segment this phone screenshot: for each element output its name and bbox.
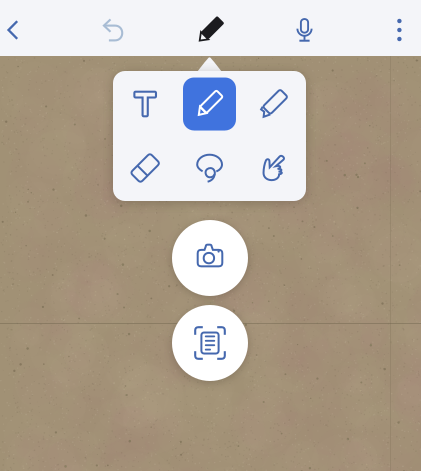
button[interactable]: Eraser tool	[113, 136, 177, 200]
button[interactable]: More options	[377, 2, 421, 58]
button[interactable]: Camera	[172, 220, 248, 296]
button[interactable]: Pen tool	[177, 72, 242, 136]
button[interactable]: Hand tool	[242, 136, 306, 200]
button[interactable]: Text tool	[113, 72, 177, 136]
button[interactable]: Highlighter tool	[242, 72, 306, 136]
button[interactable]: Lasso tool	[177, 136, 242, 200]
button[interactable]: Record audio	[281, 1, 327, 57]
button[interactable]: Back	[0, 2, 36, 58]
button[interactable]: Draw	[188, 1, 234, 57]
button[interactable]: Undo	[91, 2, 137, 58]
button[interactable]: Scan document	[172, 305, 248, 381]
